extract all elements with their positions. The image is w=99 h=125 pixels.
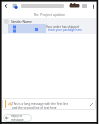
button[interactable]: Mark unread [81,3,87,9]
button[interactable]: Expand [89,102,94,107]
button[interactable]: More options [90,3,96,9]
staticText: Reply to message [11,114,32,122]
staticText: Sender Name [11,20,32,24]
button[interactable]: Back [3,3,9,9]
staticText: This is a long message with the first li… [12,102,69,106]
button[interactable]: Delete [69,2,80,9]
button[interactable]: This is a long message with the first li… [2,98,96,110]
staticText: Your order has shipped [46,25,79,29]
staticText: and the second line of text here [12,106,57,110]
staticText: track your package here [48,28,82,32]
button[interactable]: Reply to message [3,114,32,122]
staticText: Re: Project update [34,12,65,17]
button[interactable]: Archive [12,3,18,9]
